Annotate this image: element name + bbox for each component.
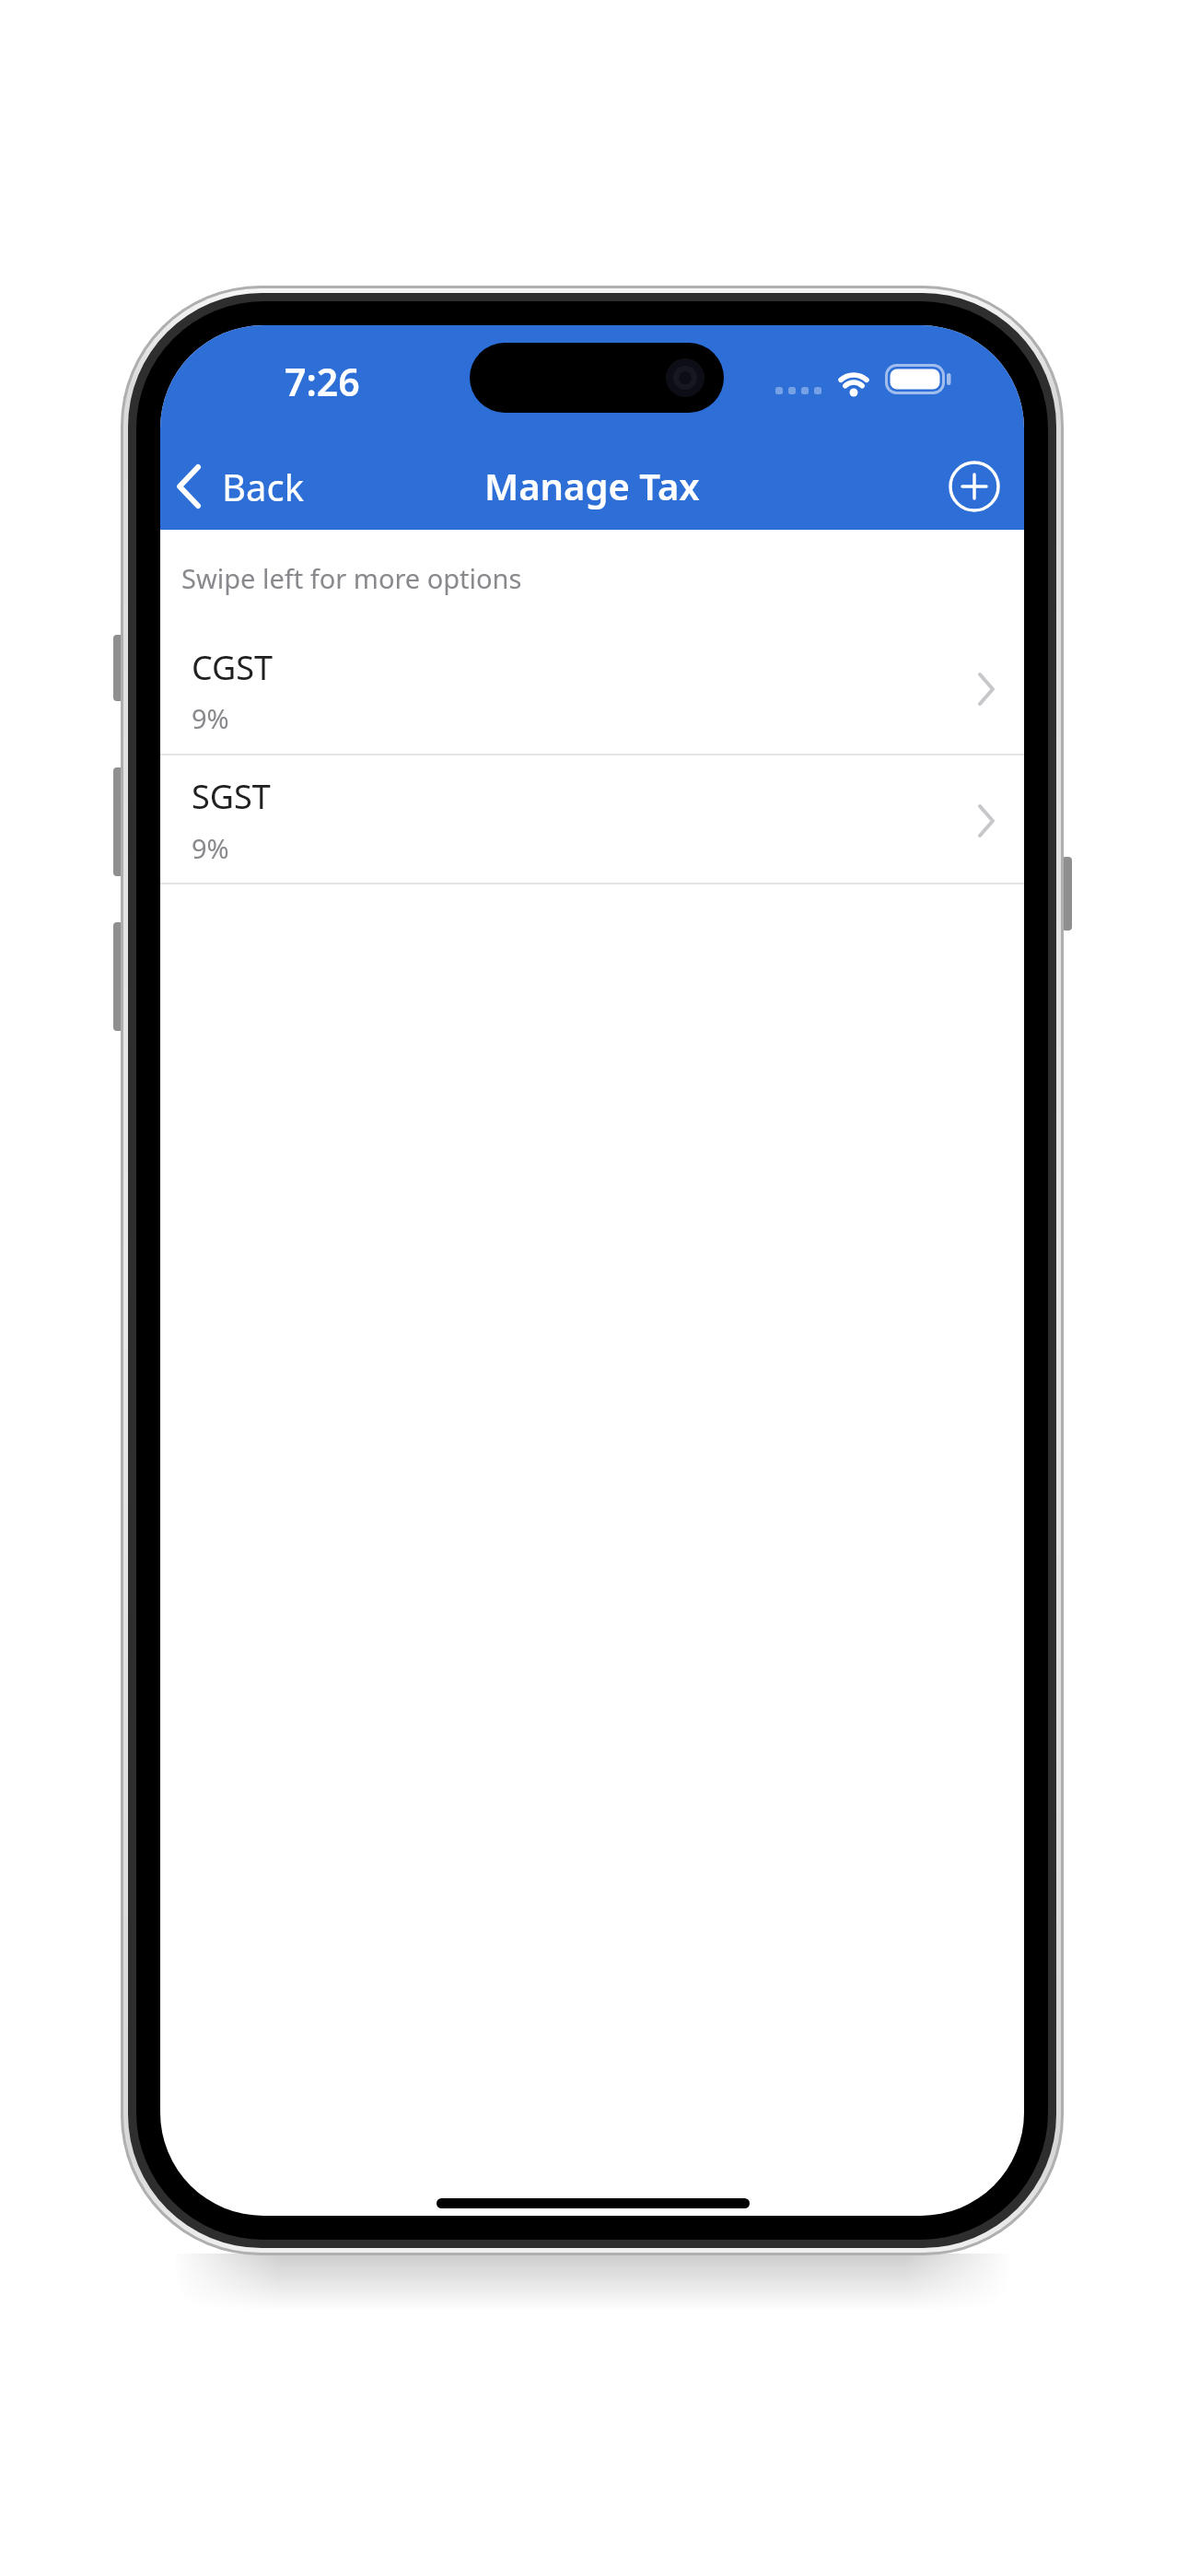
- staticText: Back: [222, 462, 304, 511]
- staticText: Swipe left for more options: [181, 560, 522, 596]
- staticText: CGST: [192, 645, 274, 690]
- staticText: Manage Tax: [484, 461, 700, 510]
- button[interactable]: [947, 459, 1002, 514]
- staticText: 7:26: [285, 356, 360, 407]
- staticText: 9%: [192, 830, 229, 866]
- button[interactable]: SGST: [160, 755, 1024, 883]
- button[interactable]: Back: [169, 458, 298, 515]
- staticText: SGST: [192, 774, 271, 819]
- staticText: 9%: [192, 700, 229, 736]
- button[interactable]: CGST: [160, 625, 1024, 754]
